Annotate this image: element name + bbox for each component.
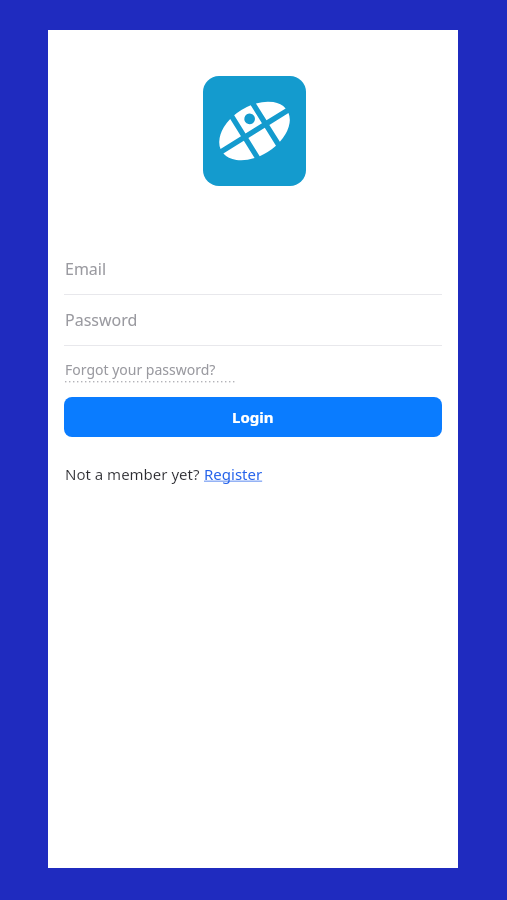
staticText: Not a member yet? (65, 464, 204, 484)
staticText: Forgot your password? (65, 360, 216, 379)
staticText: Email (65, 258, 107, 280)
staticText: Login (232, 407, 274, 427)
other: App logo (203, 76, 306, 186)
button[interactable]: Register (204, 464, 263, 484)
button[interactable]: Login (64, 397, 442, 437)
button[interactable]: Email (48, 244, 458, 295)
button[interactable]: Password (48, 295, 458, 346)
staticText: Password (65, 309, 138, 331)
staticText: Register (204, 464, 263, 484)
button[interactable]: Forgot your password? (65, 360, 236, 383)
